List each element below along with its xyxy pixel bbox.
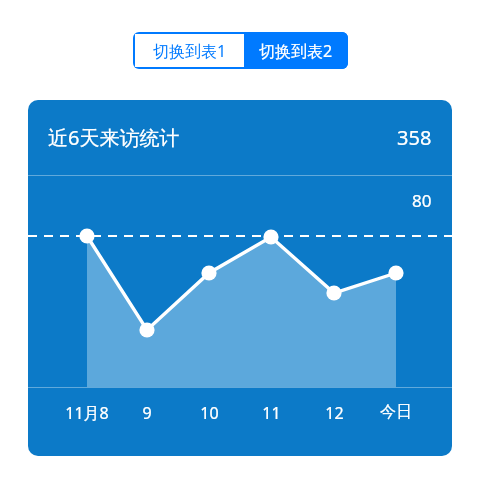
- staticText: 9: [142, 402, 152, 424]
- button[interactable]: 近6天来访统计: [28, 100, 452, 456]
- staticText: 切换到表1: [153, 40, 227, 62]
- staticText: 切换到表2: [259, 40, 333, 62]
- staticText: 11: [262, 402, 281, 424]
- staticText: 11月8: [65, 402, 109, 424]
- button[interactable]: 切换到表2: [244, 32, 348, 69]
- staticText: 12: [325, 402, 344, 424]
- staticText: 今日: [380, 402, 412, 422]
- staticText: 10: [200, 402, 219, 424]
- staticText: 80: [412, 189, 432, 212]
- button[interactable]: 切换到表1: [135, 34, 244, 67]
- staticText: 358: [397, 124, 432, 151]
- staticText: 近6天来访统计: [48, 124, 180, 151]
